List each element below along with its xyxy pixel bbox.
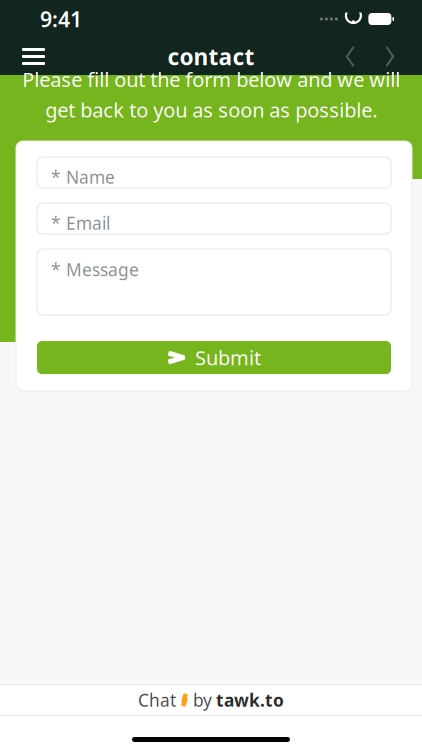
staticText: contact xyxy=(167,41,254,71)
staticText: * Email xyxy=(51,212,110,235)
button[interactable]: * Email xyxy=(37,203,391,234)
button[interactable]: Chat xyxy=(0,685,422,715)
staticText: 9:41 xyxy=(40,5,82,33)
staticText: tawk.to xyxy=(216,688,284,711)
staticText: * Name xyxy=(51,166,115,189)
button[interactable]: * Name xyxy=(37,157,391,188)
staticText: Please fill out the form below and we wi… xyxy=(22,66,400,123)
staticText: * Message xyxy=(51,258,139,281)
button[interactable]: Menu xyxy=(10,38,57,75)
staticText: Submit xyxy=(195,344,261,371)
button[interactable]: Submit xyxy=(37,341,391,374)
staticText: Chat xyxy=(138,688,176,711)
staticText: by xyxy=(193,688,212,711)
button[interactable]: * Message xyxy=(37,249,391,315)
button[interactable]: Forward xyxy=(370,38,410,74)
button[interactable]: Back xyxy=(330,38,370,74)
